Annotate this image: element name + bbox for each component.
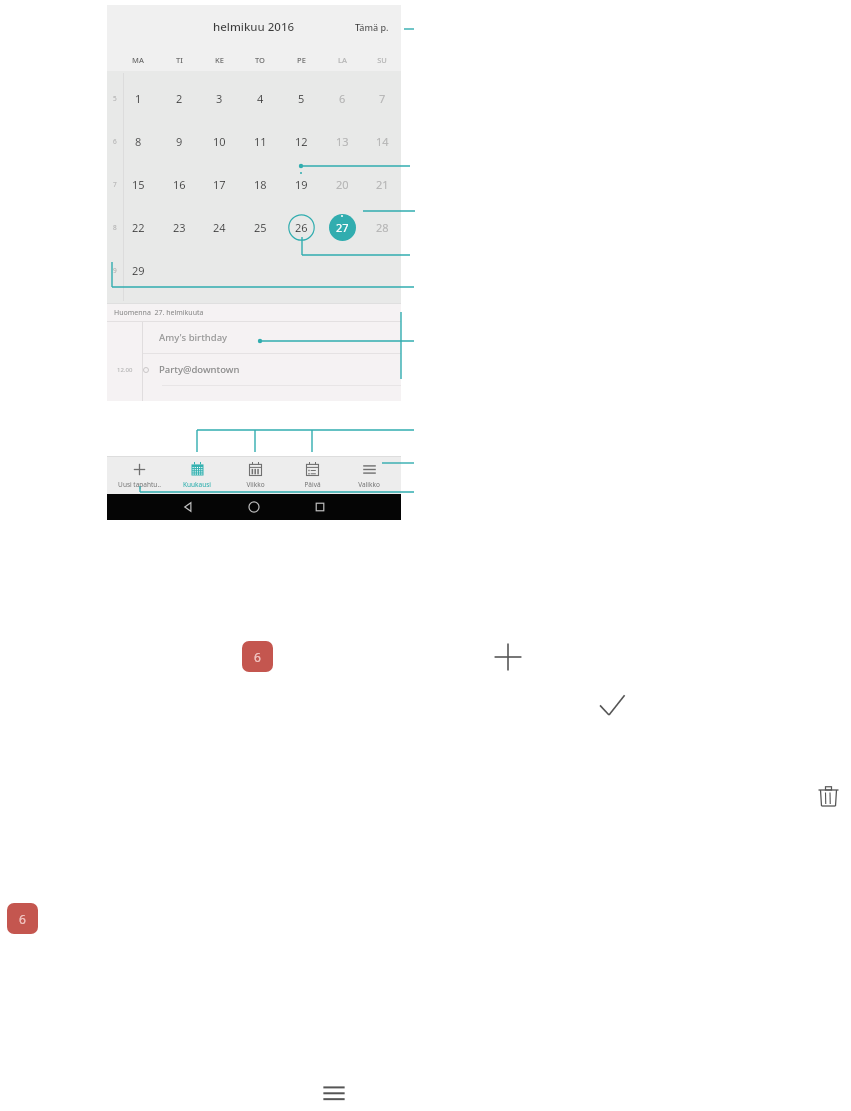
button[interactable]: Valikko xyxy=(340,456,398,494)
button[interactable]: 12 xyxy=(285,125,317,157)
button[interactable]: 29 xyxy=(122,254,154,286)
button[interactable]: 8 xyxy=(122,125,154,157)
staticText: 14 xyxy=(376,134,389,149)
button[interactable]: Calendar app icon xyxy=(7,903,38,934)
staticText: 26 xyxy=(295,220,308,235)
staticText: KE xyxy=(215,55,224,65)
button[interactable]: Viikko xyxy=(226,456,284,494)
button[interactable]: 21 xyxy=(366,168,398,200)
button[interactable]: 2 xyxy=(163,82,195,114)
button[interactable]: 18 xyxy=(244,168,276,200)
staticText: PE xyxy=(297,55,306,65)
button[interactable]: 3 xyxy=(203,82,235,114)
button[interactable]: Amy's birthday xyxy=(107,322,401,353)
staticText: 17 xyxy=(213,177,226,192)
button[interactable]: 14 xyxy=(366,125,398,157)
staticText: 3 xyxy=(216,91,223,106)
button[interactable]: 26 xyxy=(285,211,317,243)
staticText: SU xyxy=(377,55,387,65)
staticText: 5 xyxy=(113,94,117,103)
staticText: MA xyxy=(132,55,144,65)
staticText: 8 xyxy=(135,134,142,149)
staticText: Huomenna 27. helmikuuta xyxy=(114,308,204,318)
staticText: 2 xyxy=(176,91,183,106)
staticText: 19 xyxy=(295,177,308,192)
staticText: 12.00 xyxy=(117,366,133,374)
staticText: Viikko xyxy=(246,480,265,489)
staticText: 9 xyxy=(113,266,117,275)
staticText: Uusi tapahtu.. xyxy=(118,480,161,489)
button[interactable]: Delete xyxy=(816,784,841,809)
staticText: 11 xyxy=(254,134,267,149)
staticText: 22 xyxy=(132,220,145,235)
button[interactable]: 1 xyxy=(122,82,154,114)
staticText: 25 xyxy=(254,220,267,235)
button[interactable]: 25 xyxy=(244,211,276,243)
staticText: Party@downtown xyxy=(159,363,240,376)
button[interactable]: 28 xyxy=(366,211,398,243)
staticText: TO xyxy=(255,55,265,65)
button[interactable]: 11 xyxy=(244,125,276,157)
staticText: 9 xyxy=(176,134,183,149)
button[interactable]: Back xyxy=(179,498,197,516)
staticText: 6 xyxy=(339,91,346,106)
staticText: 6 xyxy=(254,649,261,665)
button[interactable]: 16 xyxy=(163,168,195,200)
button[interactable]: 7 xyxy=(366,82,398,114)
button[interactable]: 9 xyxy=(163,125,195,157)
button[interactable]: 4 xyxy=(244,82,276,114)
staticText: 18 xyxy=(254,177,267,192)
staticText: Kuukausi xyxy=(183,480,211,489)
button[interactable]: Done xyxy=(597,691,627,721)
staticText: 10 xyxy=(213,134,226,149)
staticText: Tämä p. xyxy=(355,21,389,33)
button[interactable]: Home xyxy=(245,498,263,516)
staticText: Päivä xyxy=(304,480,321,489)
staticText: 6 xyxy=(113,137,117,146)
button[interactable]: 10 xyxy=(203,125,235,157)
button[interactable]: 13 xyxy=(326,125,358,157)
button[interactable]: 27 xyxy=(326,211,358,243)
staticText: 16 xyxy=(173,177,186,192)
button[interactable]: 17 xyxy=(203,168,235,200)
staticText: 27 xyxy=(336,220,349,235)
button[interactable]: 22 xyxy=(122,211,154,243)
staticText: 7 xyxy=(113,180,117,189)
staticText: LA xyxy=(338,55,347,65)
staticText: 13 xyxy=(336,134,349,149)
staticText: Amy's birthday xyxy=(159,331,228,344)
staticText: 6 xyxy=(19,911,26,927)
staticText: TI xyxy=(176,55,183,65)
staticText: 20 xyxy=(336,177,349,192)
staticText: 12 xyxy=(295,134,308,149)
button[interactable]: 6 xyxy=(326,82,358,114)
button[interactable]: 15 xyxy=(122,168,154,200)
staticText: 23 xyxy=(173,220,186,235)
button[interactable]: Kuukausi xyxy=(168,456,226,494)
staticText: 5 xyxy=(298,91,305,106)
button[interactable]: 24 xyxy=(203,211,235,243)
staticText: 7 xyxy=(379,91,386,106)
button[interactable]: 12.00 xyxy=(107,354,401,385)
staticText: helmikuu 2016 xyxy=(213,19,295,35)
staticText: 8 xyxy=(113,223,117,232)
button[interactable]: 23 xyxy=(163,211,195,243)
button[interactable]: Uusi tapahtu.. xyxy=(110,456,168,494)
staticText: 24 xyxy=(213,220,226,235)
staticText: 29 xyxy=(132,263,145,278)
staticText: 28 xyxy=(376,220,389,235)
button[interactable]: Päivä xyxy=(283,456,341,494)
button[interactable]: 19 xyxy=(285,168,317,200)
staticText: Valikko xyxy=(358,480,380,489)
button[interactable]: Add xyxy=(492,641,524,673)
staticText: 15 xyxy=(132,177,145,192)
staticText: 1 xyxy=(135,91,142,106)
button[interactable]: Menu xyxy=(320,1079,348,1107)
button[interactable]: Recents xyxy=(311,498,329,516)
button[interactable]: Tämä p. xyxy=(353,17,391,37)
button[interactable]: 20 xyxy=(326,168,358,200)
staticText: 21 xyxy=(376,177,389,192)
button[interactable]: Calendar app icon xyxy=(242,641,273,672)
button[interactable]: 5 xyxy=(285,82,317,114)
staticText: 4 xyxy=(257,91,264,106)
